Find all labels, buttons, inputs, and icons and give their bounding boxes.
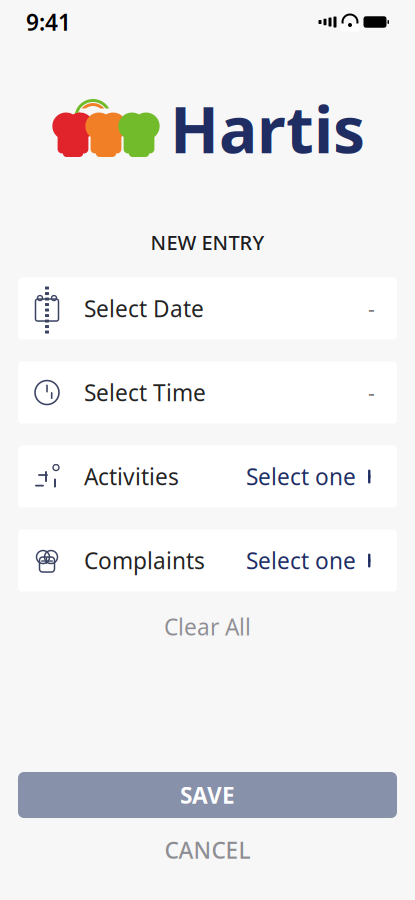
staticText: -: [368, 378, 375, 407]
button[interactable]: CANCEL: [18, 828, 397, 872]
staticText: Select Date: [84, 293, 204, 324]
staticText: Clear All: [164, 611, 251, 642]
staticText: NEW ENTRY: [150, 229, 264, 256]
button[interactable]: SAVE: [18, 772, 397, 818]
staticText: Select Time: [84, 377, 206, 408]
staticText: Activities: [84, 461, 179, 492]
button[interactable]: Activities: [18, 445, 397, 507]
button[interactable]: Clear All: [140, 601, 275, 652]
staticText: SAVE: [180, 780, 235, 810]
staticText: Select one: [246, 545, 356, 576]
staticText: CANCEL: [164, 835, 250, 865]
staticText: Complaints: [84, 545, 205, 576]
staticText: Select one: [246, 461, 356, 492]
staticText: 9:41: [26, 7, 71, 37]
button[interactable]: Select Date: [18, 277, 397, 339]
button[interactable]: Complaints: [18, 529, 397, 591]
staticText: -: [368, 294, 375, 323]
staticText: Hartis: [170, 86, 365, 171]
button[interactable]: Select Time: [18, 361, 397, 423]
